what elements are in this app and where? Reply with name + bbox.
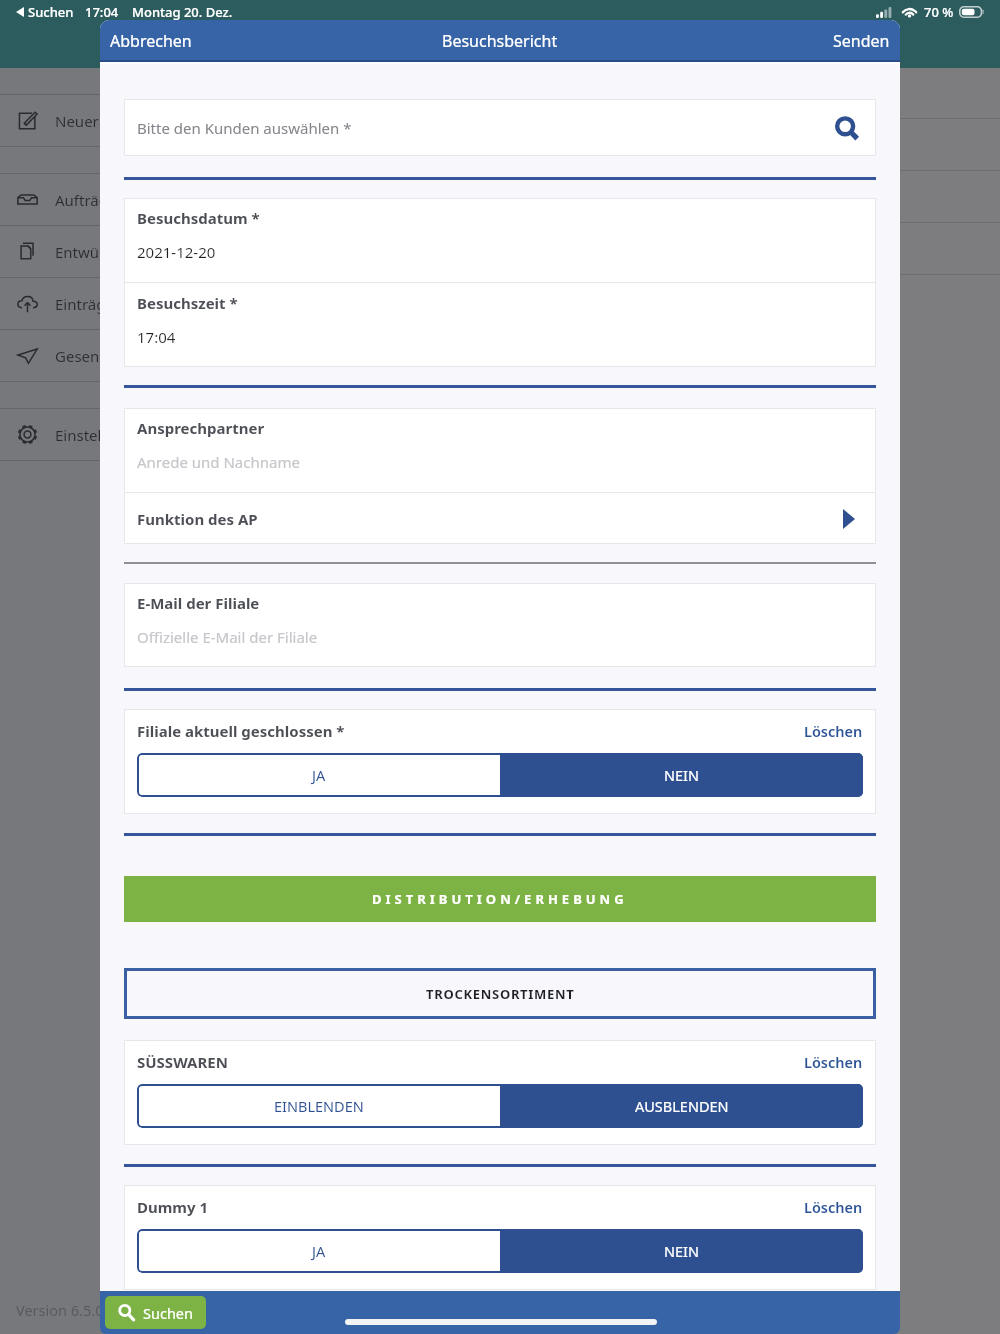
- staticText: Senden: [833, 30, 890, 52]
- button[interactable]: Einstellungen: [0, 409, 290, 460]
- staticText: Besuchszeit *: [137, 293, 238, 313]
- staticText: Dummy 1: [137, 1197, 209, 1217]
- staticText: Gesendet: [55, 346, 123, 366]
- staticText: EINBLENDEN: [274, 1096, 364, 1116]
- staticText: Löschen: [804, 1052, 863, 1072]
- staticText: Funktion des AP: [137, 509, 258, 529]
- button[interactable]: TROCKENSORTIMENT: [124, 968, 876, 1019]
- button[interactable]: JA: [137, 753, 500, 797]
- button[interactable]: Einträge: [0, 278, 290, 329]
- button[interactable]: Suchen: [105, 1296, 206, 1329]
- button[interactable]: Senden: [823, 20, 900, 62]
- staticText: Suchen: [143, 1303, 193, 1323]
- staticText: Abbrechen: [110, 30, 192, 52]
- staticText: Suchen: [28, 3, 74, 21]
- staticText: E-Mail der Filiale: [137, 593, 260, 613]
- staticText: Löschen: [804, 1197, 863, 1217]
- staticText: JA: [312, 765, 326, 785]
- staticText: Einstellungen: [55, 425, 151, 445]
- staticText: Besuchsbericht: [442, 30, 558, 52]
- button[interactable]: NEIN: [500, 753, 863, 797]
- staticText: DISTRIBUTION/ERHEBUNG: [372, 890, 628, 908]
- button[interactable]: Bitte den Kunden auswählen *: [124, 99, 876, 156]
- staticText: 2021-12-20: [137, 242, 216, 262]
- staticText: JA: [312, 1241, 326, 1261]
- staticText: 17:04: [85, 3, 119, 21]
- button[interactable]: Löschen: [803, 1049, 864, 1075]
- button[interactable]: Löschen: [803, 1194, 864, 1220]
- staticText: Filiale aktuell geschlossen *: [137, 721, 345, 741]
- button[interactable]: Aufträge: [0, 174, 290, 225]
- staticText: Besuchsdatum *: [137, 208, 260, 228]
- button[interactable]: EINBLENDEN: [137, 1084, 500, 1128]
- staticText: Version 6.5.0: [16, 1300, 104, 1320]
- staticText: Entwürfe: [55, 242, 119, 262]
- staticText: Ansprechpartner: [137, 418, 265, 438]
- staticText: NEIN: [664, 1241, 700, 1261]
- button[interactable]: Ansprechpartner: [124, 408, 876, 492]
- button[interactable]: Besuchsdatum *: [124, 198, 876, 282]
- staticText: Bitte den Kunden auswählen *: [137, 118, 352, 138]
- staticText: NEIN: [664, 765, 700, 785]
- staticText: Löschen: [804, 721, 863, 741]
- button[interactable]: JA: [137, 1229, 500, 1273]
- staticText: Montag 20. Dez.: [132, 3, 233, 21]
- button[interactable]: Gesendet: [0, 330, 290, 381]
- button[interactable]: Neuer Bericht: [0, 95, 290, 146]
- staticText: 70 %: [924, 3, 954, 21]
- staticText: Offizielle E-Mail der Filiale: [137, 627, 318, 647]
- button[interactable]: Funktion des AP: [124, 493, 876, 544]
- button[interactable]: Abbrechen: [100, 20, 202, 62]
- button[interactable]: Besuchszeit *: [124, 283, 876, 367]
- button[interactable]: NEIN: [500, 1229, 863, 1273]
- staticText: Einträge: [55, 294, 114, 314]
- button[interactable]: Löschen: [803, 718, 864, 744]
- staticText: Neuer Bericht: [55, 111, 153, 131]
- staticText: SÜSSWAREN: [137, 1052, 228, 1072]
- other: Funktion des AP auswählen: [843, 509, 855, 529]
- button[interactable]: AUSBLENDEN: [500, 1084, 863, 1128]
- button[interactable]: Kunden suchen: [832, 114, 860, 142]
- button[interactable]: Entwürfe: [0, 226, 290, 277]
- staticText: Anrede und Nachname: [137, 452, 300, 472]
- staticText: AUSBLENDEN: [635, 1096, 729, 1116]
- staticText: TROCKENSORTIMENT: [426, 985, 575, 1003]
- button[interactable]: DISTRIBUTION/ERHEBUNG: [124, 876, 876, 922]
- button[interactable]: E-Mail der Filiale: [124, 583, 876, 667]
- staticText: 17:04: [137, 327, 176, 347]
- staticText: Aufträge: [55, 190, 117, 210]
